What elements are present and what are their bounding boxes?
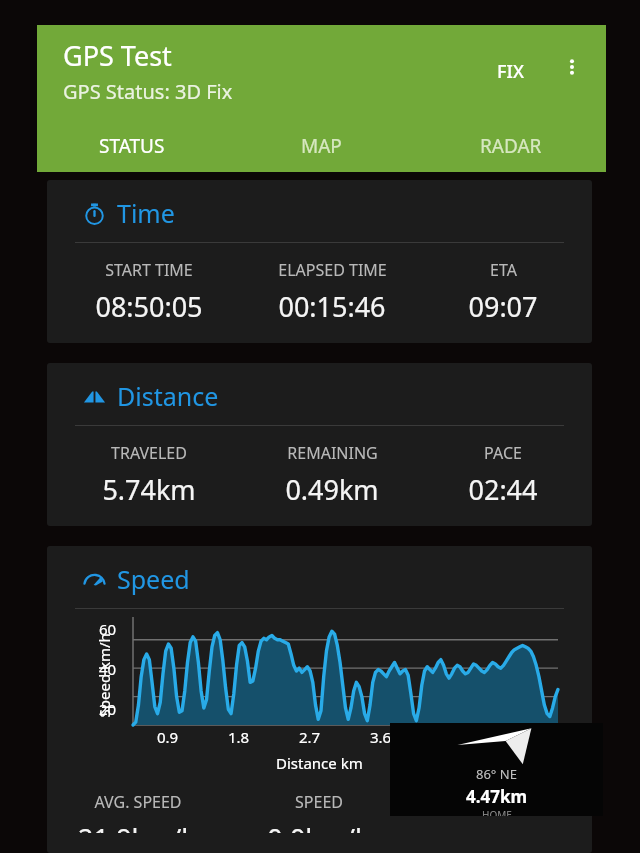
button[interactable]: Speed: [47, 546, 592, 853]
staticText: Distance km: [276, 753, 363, 773]
button[interactable]: Direction to home: [390, 723, 603, 816]
staticText: 0.49km: [285, 471, 379, 508]
button[interactable]: RADAR: [416, 120, 606, 172]
button[interactable]: More options: [552, 47, 592, 87]
staticText: 4.47km: [466, 785, 528, 808]
staticText: 21.9km/h: [78, 820, 198, 833]
staticText: Distance: [117, 379, 219, 413]
button[interactable]: MAP: [226, 120, 416, 172]
staticText: PACE: [484, 442, 522, 464]
staticText: REMAINING: [287, 442, 378, 464]
staticText: 86° NE: [476, 765, 517, 783]
staticText: AVG. SPEED: [94, 791, 182, 813]
staticText: 0.0km/h: [267, 820, 372, 833]
staticText: 3.6: [370, 727, 392, 747]
staticText: 40: [99, 659, 117, 679]
staticText: 00:15:46: [278, 288, 386, 325]
staticText: 60: [99, 619, 117, 639]
staticText: TRAVELED: [111, 442, 187, 464]
staticText: ETA: [490, 259, 517, 281]
staticText: Time: [117, 196, 175, 230]
staticText: 08:50:05: [95, 288, 203, 325]
staticText: SPEED: [295, 791, 343, 813]
staticText: 02:44: [468, 471, 538, 508]
staticText: 0.9: [157, 727, 179, 747]
staticText: STATUS: [99, 133, 165, 159]
staticText: 4.5: [441, 727, 463, 747]
staticText: GPS Test: [63, 37, 172, 74]
staticText: HOME: [482, 808, 512, 816]
button[interactable]: Time: [47, 180, 592, 343]
button[interactable]: STATUS: [37, 120, 226, 172]
staticText: GPS Status: 3D Fix: [63, 78, 233, 105]
staticText: 09:07: [468, 288, 538, 325]
staticText: MAP: [301, 133, 342, 159]
staticText: 2.7: [299, 727, 321, 747]
staticText: Speed km/h: [93, 632, 113, 717]
staticText: 1.8: [228, 727, 250, 747]
staticText: Speed: [117, 562, 190, 596]
staticText: FIX: [497, 59, 524, 84]
staticText: RADAR: [480, 133, 542, 159]
button[interactable]: Distance: [47, 363, 592, 526]
staticText: START TIME: [105, 259, 193, 281]
staticText: 5.74km: [102, 471, 196, 508]
staticText: 20: [99, 699, 117, 719]
button[interactable]: FIX: [487, 55, 534, 88]
staticText: ELAPSED TIME: [278, 259, 387, 281]
staticText: 5.4: [512, 727, 534, 747]
